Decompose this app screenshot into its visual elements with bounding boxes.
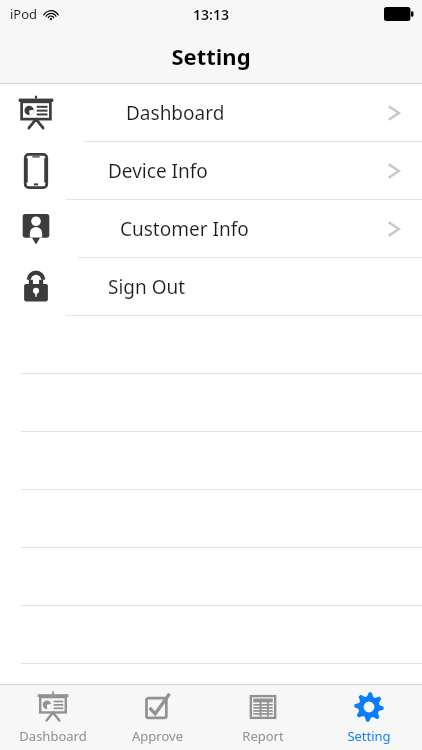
button[interactable]: Device Info	[0, 142, 422, 200]
staticText: Customer Info	[120, 216, 249, 242]
button[interactable]: Dashboard	[0, 84, 422, 142]
button[interactable]: Sign Out	[0, 258, 422, 316]
button[interactable]: Dashboard	[0, 685, 105, 750]
button[interactable]: Setting	[316, 685, 422, 750]
staticText: Sign Out	[108, 274, 186, 300]
staticText: Dashboard	[19, 727, 87, 745]
button[interactable]: Approve	[105, 685, 210, 750]
button[interactable]: Report	[210, 685, 316, 750]
staticText: Approve	[132, 727, 183, 745]
staticText: Dashboard	[126, 100, 225, 126]
staticText: Setting	[171, 41, 251, 71]
staticText: Device Info	[108, 158, 208, 184]
staticText: Report	[242, 727, 284, 745]
button[interactable]: Customer Info	[0, 200, 422, 258]
staticText: iPod	[10, 5, 38, 23]
staticText: 13:13	[193, 5, 229, 24]
staticText: Setting	[347, 727, 391, 745]
